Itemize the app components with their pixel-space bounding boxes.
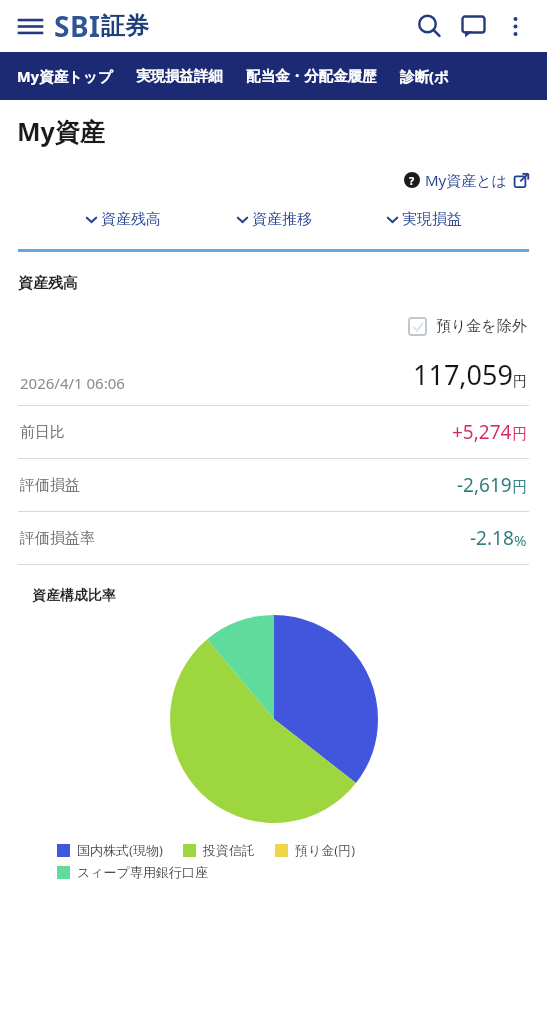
button[interactable]: 実現損益 <box>382 206 466 233</box>
staticText: 証券 <box>101 11 149 41</box>
button[interactable]: More options <box>495 6 535 46</box>
button[interactable]: 預り金を除外 <box>404 313 531 340</box>
button[interactable]: 預り金(円) <box>275 841 356 859</box>
button[interactable]: 診断(ポ <box>400 52 449 100</box>
button[interactable]: 評価損益率 <box>0 512 547 564</box>
staticText: SBI <box>54 7 101 45</box>
staticText: My資産 <box>17 114 105 148</box>
button[interactable]: 実現損益詳細 <box>136 52 223 100</box>
button[interactable]: Messages <box>451 4 495 48</box>
staticText: 実現損益 <box>402 210 462 229</box>
staticText: 円 <box>512 425 527 444</box>
staticText: 前日比 <box>20 423 65 442</box>
staticText: 円 <box>513 373 527 391</box>
staticText: 預り金(円) <box>295 841 356 859</box>
staticText: 資産残高 <box>101 210 161 229</box>
staticText: 資産残高 <box>18 274 78 293</box>
staticText: 国内株式(現物) <box>77 841 163 859</box>
staticText: -2.18 <box>470 525 514 551</box>
button[interactable]: 投資信託 <box>183 842 255 858</box>
staticText: 2026/4/1 06:06 <box>20 373 125 393</box>
button[interactable]: ? <box>404 168 529 192</box>
staticText: % <box>514 530 527 550</box>
button[interactable]: My資産トップ <box>17 52 113 100</box>
button[interactable]: Search <box>407 4 451 48</box>
button[interactable]: スィープ専用銀行口座 <box>57 864 208 880</box>
button[interactable]: 配当金・分配金履歴 <box>246 52 377 100</box>
button[interactable]: 資産残高 <box>81 206 165 233</box>
staticText: 預り金を除外 <box>436 317 527 336</box>
staticText: -2,619 <box>457 472 512 498</box>
staticText: 資産推移 <box>252 210 312 229</box>
button[interactable]: 前日比 <box>0 406 547 458</box>
staticText: My資産トップ <box>17 66 113 86</box>
button[interactable]: SBI <box>54 3 149 49</box>
button[interactable]: Menu <box>12 8 48 44</box>
staticText: +5,274 <box>452 419 512 445</box>
staticText: My資産とは <box>425 170 507 190</box>
staticText: 投資信託 <box>203 842 255 858</box>
button[interactable]: 資産推移 <box>232 206 316 233</box>
staticText: 評価損益率 <box>20 529 95 548</box>
button[interactable]: 評価損益 <box>0 459 547 511</box>
staticText: 117,059 <box>413 356 513 393</box>
staticText: 資産構成比率 <box>32 587 116 605</box>
staticText: 評価損益 <box>20 476 80 495</box>
staticText: 配当金・分配金履歴 <box>246 67 377 85</box>
staticText: スィープ専用銀行口座 <box>77 864 208 880</box>
staticText: 診断(ポ <box>400 66 449 86</box>
staticText: ? <box>409 173 415 188</box>
staticText: 円 <box>512 478 527 497</box>
staticText: 実現損益詳細 <box>136 67 223 85</box>
button[interactable]: 国内株式(現物) <box>57 841 163 859</box>
